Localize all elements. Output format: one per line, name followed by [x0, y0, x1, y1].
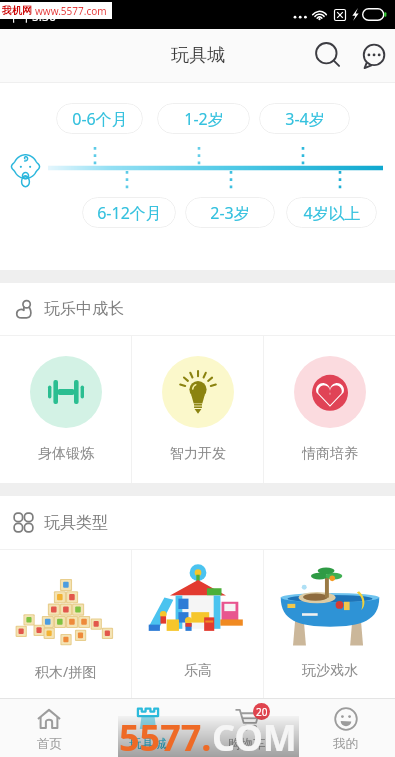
- button[interactable]: 智力开发: [132, 336, 263, 483]
- button[interactable]: 身体锻炼: [0, 336, 131, 483]
- staticText: 6-12个月: [97, 202, 162, 224]
- button[interactable]: 6-12个月: [82, 197, 176, 228]
- button[interactable]: Messages: [351, 34, 395, 78]
- button[interactable]: 0-6个月: [56, 103, 143, 134]
- button[interactable]: 首页: [0, 699, 98, 757]
- staticText: 1-2岁: [184, 108, 224, 130]
- staticText: 玩乐中成长: [44, 299, 124, 319]
- button[interactable]: 我的: [296, 699, 395, 757]
- staticText: 玩具类型: [44, 513, 108, 533]
- staticText: 我的: [333, 736, 358, 752]
- staticText: 智力开发: [170, 445, 226, 463]
- staticText: 2-3岁: [210, 202, 250, 224]
- staticText: 玩沙戏水: [302, 662, 358, 680]
- staticText: 购物车: [228, 736, 266, 752]
- staticText: 情商培养: [302, 445, 358, 463]
- staticText: 首页: [37, 736, 62, 752]
- staticText: 身体锻炼: [38, 445, 94, 463]
- button[interactable]: 玩沙戏水: [264, 550, 395, 698]
- staticText: 乐高: [184, 662, 212, 680]
- button[interactable]: 2-3岁: [185, 197, 275, 228]
- staticText: COM: [212, 713, 297, 757]
- staticText: 20: [256, 705, 268, 719]
- button[interactable]: 乐高: [132, 550, 263, 698]
- staticText: 积木/拼图: [35, 662, 97, 681]
- button[interactable]: 4岁以上: [286, 197, 377, 228]
- button[interactable]: 3-4岁: [259, 103, 350, 134]
- button[interactable]: 情商培养: [264, 336, 395, 483]
- staticText: 玩具城: [171, 44, 225, 67]
- button[interactable]: 20: [197, 699, 296, 757]
- button[interactable]: Search: [306, 34, 350, 78]
- staticText: 玩具城: [129, 736, 167, 752]
- staticText: 我机网: [2, 4, 32, 17]
- staticText: 0-6个月: [72, 108, 128, 130]
- button[interactable]: 玩具城: [98, 699, 197, 757]
- button[interactable]: 积木/拼图: [0, 550, 131, 698]
- staticText: 3-4岁: [285, 108, 325, 130]
- button[interactable]: 1-2岁: [157, 103, 250, 134]
- staticText: 4岁以上: [303, 202, 361, 224]
- staticText: www.5577.com: [35, 4, 107, 18]
- staticText: 5577.: [119, 713, 212, 757]
- staticText: 下午5:36: [8, 8, 56, 24]
